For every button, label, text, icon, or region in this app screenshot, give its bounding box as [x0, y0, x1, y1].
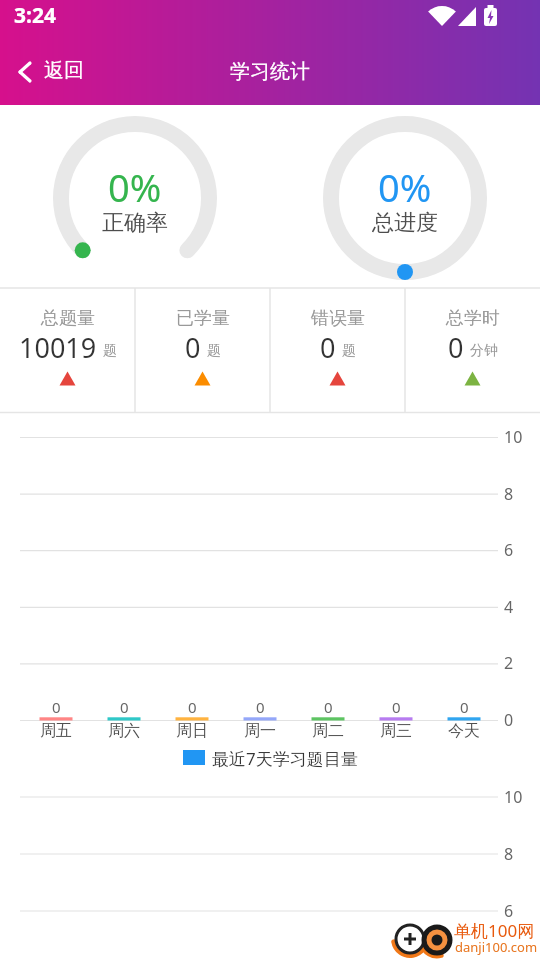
- staticText: 学习统计: [230, 59, 310, 84]
- staticText: 10: [504, 786, 523, 808]
- staticText: 0: [324, 697, 333, 717]
- staticText: 0%: [108, 161, 162, 205]
- staticText: 分钟: [470, 342, 498, 360]
- staticText: 单机100网: [454, 919, 535, 942]
- staticText: 总题量: [41, 307, 95, 330]
- staticText: 周一: [244, 721, 276, 741]
- staticText: 周六: [108, 721, 140, 741]
- staticText: 总学时: [446, 307, 500, 330]
- staticText: 0: [256, 697, 265, 717]
- staticText: 已学量: [176, 307, 230, 330]
- staticText: 周五: [40, 721, 72, 741]
- staticText: 10019: [19, 329, 97, 365]
- staticText: 正确率: [102, 209, 168, 235]
- staticText: 周二: [312, 721, 344, 741]
- staticText: 0: [448, 329, 464, 365]
- staticText: 周日: [176, 721, 208, 741]
- staticText: 0: [52, 697, 61, 717]
- staticText: 8: [504, 843, 514, 865]
- staticText: 0: [504, 709, 514, 731]
- staticText: 0: [460, 697, 469, 717]
- staticText: 0: [120, 697, 129, 717]
- staticText: 0: [185, 329, 201, 365]
- staticText: 今天: [448, 721, 480, 741]
- staticText: 6: [504, 539, 514, 561]
- staticText: 返回: [44, 58, 84, 83]
- staticText: 6: [504, 900, 514, 922]
- staticText: 4: [504, 596, 514, 618]
- staticText: 错误量: [311, 307, 365, 330]
- staticText: 0: [392, 697, 401, 717]
- staticText: 8: [504, 483, 514, 505]
- staticText: 3:24: [14, 1, 56, 30]
- staticText: danji100.com: [455, 938, 538, 956]
- button[interactable]: 返回: [8, 52, 98, 92]
- staticText: 0: [320, 329, 336, 365]
- staticText: 题: [207, 342, 221, 360]
- staticText: 周三: [380, 721, 412, 741]
- staticText: 最近7天学习题目量: [212, 747, 358, 770]
- staticText: 10: [504, 426, 523, 448]
- staticText: 题: [103, 342, 117, 360]
- staticText: 0: [188, 697, 197, 717]
- staticText: 总进度: [372, 209, 438, 235]
- staticText: 2: [504, 652, 514, 674]
- staticText: 0%: [378, 161, 432, 205]
- staticText: 题: [342, 342, 356, 360]
